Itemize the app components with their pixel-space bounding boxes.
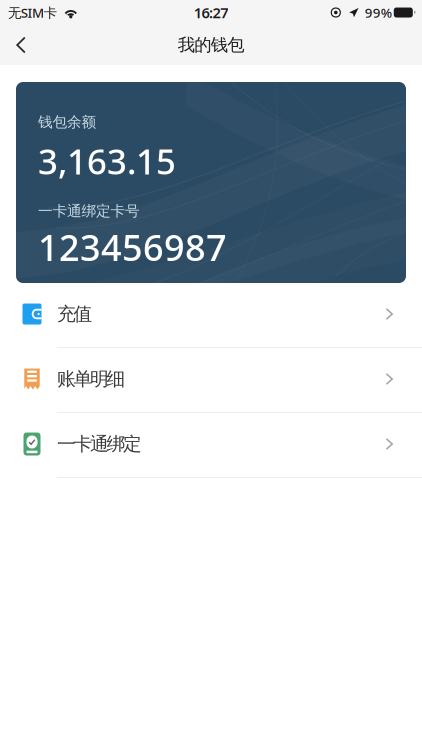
staticText: 账单明细 — [57, 367, 125, 390]
staticText: 123456987 — [38, 223, 227, 271]
staticText: 16:27 — [194, 3, 228, 22]
staticText: 充值 — [57, 302, 92, 325]
staticText: 3,163.15 — [38, 138, 176, 184]
staticText: 无SIM卡 — [8, 4, 57, 21]
staticText: 我的钱包 — [178, 34, 244, 56]
staticText: 一卡通绑定 — [57, 432, 142, 455]
staticText: 钱包余额 — [38, 113, 96, 131]
staticText: 99% — [365, 4, 392, 21]
button[interactable]: 一卡通绑定 — [0, 413, 422, 478]
button[interactable]: 返回 — [0, 27, 52, 63]
button[interactable]: 充值 — [0, 283, 422, 348]
button[interactable]: 账单明细 — [0, 348, 422, 413]
staticText: 一卡通绑定卡号 — [38, 202, 140, 220]
